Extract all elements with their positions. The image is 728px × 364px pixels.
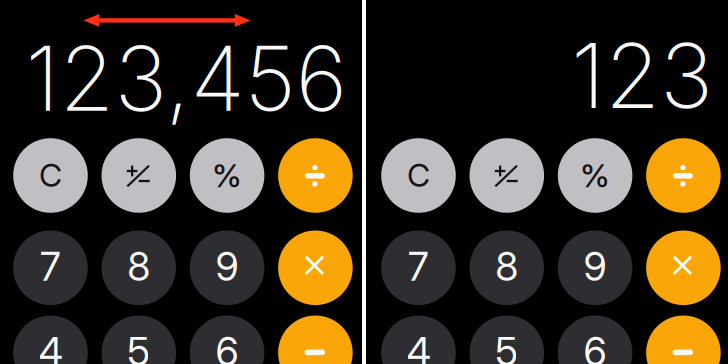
staticText: 6 bbox=[216, 328, 239, 364]
button[interactable]: Multiply bbox=[278, 230, 353, 305]
button[interactable]: 4 bbox=[13, 315, 88, 364]
button[interactable]: 7 bbox=[381, 230, 456, 305]
button[interactable]: % bbox=[558, 138, 632, 213]
button[interactable]: 6 bbox=[558, 315, 632, 364]
button[interactable]: Plus minus bbox=[469, 138, 544, 213]
button[interactable]: Plus minus bbox=[101, 138, 176, 213]
button[interactable]: Divide bbox=[646, 138, 721, 213]
button[interactable]: % bbox=[190, 138, 264, 213]
staticText: % bbox=[580, 156, 610, 195]
staticText: 8 bbox=[127, 243, 150, 290]
button[interactable]: 5 bbox=[469, 315, 544, 364]
button[interactable]: C bbox=[13, 138, 88, 213]
staticText: 4 bbox=[406, 328, 430, 364]
button[interactable]: Divide bbox=[278, 138, 353, 213]
button[interactable]: 8 bbox=[101, 230, 176, 305]
button[interactable]: 9 bbox=[190, 230, 264, 305]
button[interactable]: 6 bbox=[190, 315, 264, 364]
staticText: 4 bbox=[38, 328, 62, 364]
staticText: 9 bbox=[584, 243, 607, 290]
button[interactable]: 9 bbox=[558, 230, 632, 305]
staticText: 6 bbox=[584, 328, 607, 364]
staticText: 5 bbox=[495, 328, 518, 364]
button[interactable]: 5 bbox=[101, 315, 176, 364]
staticText: 123,456 bbox=[25, 25, 347, 132]
button[interactable]: 4 bbox=[381, 315, 456, 364]
staticText: 7 bbox=[40, 243, 61, 290]
staticText: 123 bbox=[571, 21, 713, 130]
button[interactable]: Subtract bbox=[278, 315, 353, 364]
staticText: 7 bbox=[408, 243, 429, 290]
button[interactable]: C bbox=[381, 138, 456, 213]
staticText: C bbox=[407, 156, 430, 194]
staticText: 5 bbox=[127, 328, 150, 364]
staticText: 8 bbox=[495, 243, 518, 290]
button[interactable]: Multiply bbox=[646, 230, 721, 305]
button[interactable]: Subtract bbox=[646, 315, 721, 364]
button[interactable]: 7 bbox=[13, 230, 88, 305]
staticText: 9 bbox=[216, 243, 239, 290]
button[interactable]: 8 bbox=[469, 230, 544, 305]
staticText: C bbox=[39, 156, 62, 194]
staticText: % bbox=[212, 156, 242, 195]
